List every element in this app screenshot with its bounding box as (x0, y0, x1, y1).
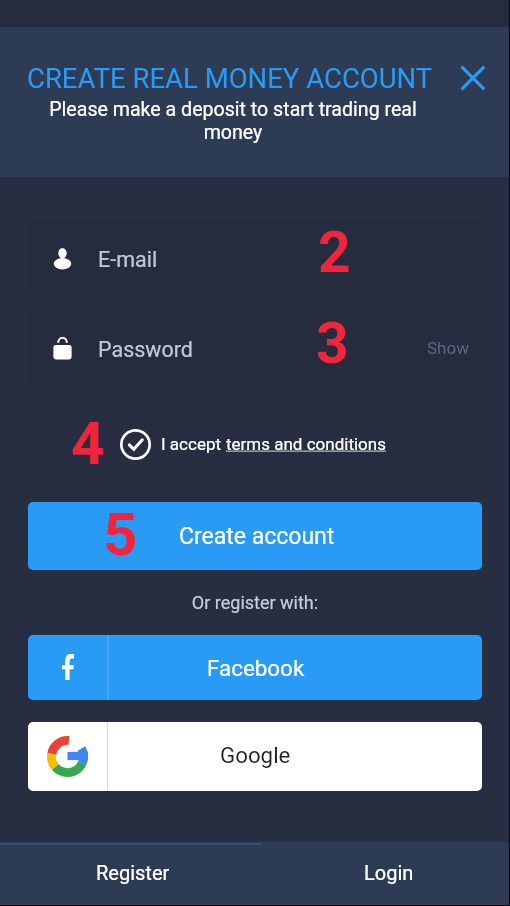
button[interactable]: E-mail (28, 221, 482, 294)
staticText: terms and conditions (226, 434, 386, 454)
staticText: Please make a deposit to start trading r… (30, 98, 436, 144)
staticText: Login (364, 861, 414, 884)
staticText: Google (220, 742, 291, 768)
button[interactable]: Show (414, 311, 482, 384)
staticText: CREATE REAL MONEY ACCOUNT (27, 62, 433, 94)
button[interactable]: Password (28, 311, 482, 384)
staticText: Create account (179, 523, 335, 550)
button[interactable]: Create account (28, 502, 482, 570)
staticText: Facebook (207, 655, 305, 681)
staticText: 4 (71, 409, 105, 478)
staticText: E-mail (98, 247, 158, 272)
staticText: Show (427, 338, 469, 358)
button[interactable]: Login (261, 842, 510, 905)
button[interactable]: Google (28, 722, 482, 791)
staticText: Register (96, 861, 170, 884)
staticText: 5 (103, 502, 138, 567)
staticText: Or register with: (0, 592, 510, 613)
button[interactable]: Facebook (28, 635, 482, 700)
button[interactable]: Close (450, 56, 494, 100)
staticText: 2 (318, 221, 351, 286)
other: Accept terms and conditions (120, 429, 151, 460)
staticText: 3 (316, 311, 349, 377)
button[interactable]: Accept terms and conditions (120, 427, 386, 461)
staticText: I accept (161, 434, 226, 454)
staticText: Password (98, 337, 193, 362)
button[interactable]: Register (0, 842, 261, 905)
